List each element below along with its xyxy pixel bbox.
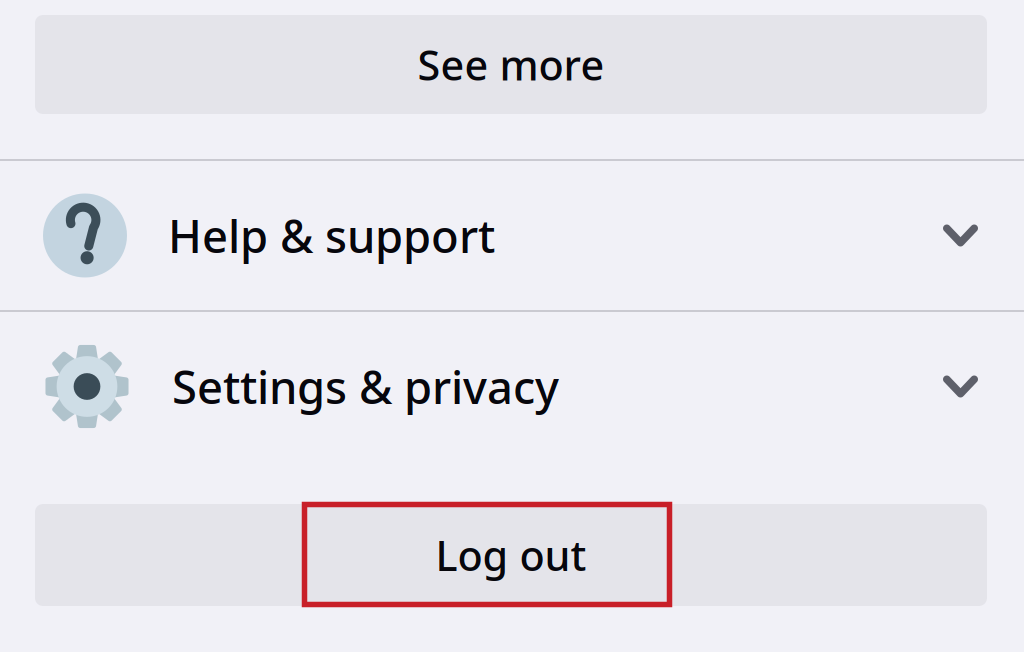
button[interactable]: See more [35,15,987,114]
staticText: Help & support [168,205,495,266]
staticText: Log out [435,528,586,582]
button[interactable]: Help & support [0,161,1024,310]
button[interactable]: Log out [35,504,987,606]
button[interactable]: Settings & privacy [0,312,1024,461]
staticText: Settings & privacy [172,356,559,417]
staticText: See more [417,37,604,92]
